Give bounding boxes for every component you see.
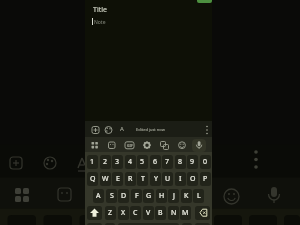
button[interactable]: 8 [175,155,186,169]
button[interactable] [192,139,206,152]
staticText: 3 [115,157,120,167]
button[interactable]: 9 [187,155,198,169]
staticText: X [121,208,126,218]
staticText: Y [154,174,158,184]
staticText: S [110,191,114,201]
button[interactable]: E [112,172,123,186]
staticText: J [173,191,175,201]
staticText: U [165,174,171,184]
staticText: N [171,208,177,218]
staticText: A [120,125,124,133]
button[interactable]: J [168,189,179,203]
button[interactable]: B [155,206,166,220]
staticText: D [121,191,127,201]
staticText: F [135,191,139,201]
button[interactable]: X [118,206,129,220]
button[interactable]: D [118,189,129,203]
staticText: R [128,174,133,184]
staticText: 1 [90,157,95,167]
button[interactable]: M [180,206,191,220]
button[interactable]: H [156,189,167,203]
button[interactable]: A [85,121,212,137]
staticText: 4 [128,157,133,167]
staticText: GIF [127,143,133,148]
button[interactable]: 1 [87,155,98,169]
button[interactable]: C [130,206,141,220]
staticText: Edited just now [136,127,165,132]
button[interactable]: R [125,172,136,186]
button[interactable]: 4 [125,155,136,169]
staticText: P [203,174,208,184]
staticText: A [96,191,101,201]
button[interactable]: Q [87,172,98,186]
button[interactable]: U [162,172,173,186]
button[interactable]: L [193,189,204,203]
button[interactable]: Y [150,172,161,186]
staticText: 0 [203,157,208,167]
staticText: E [116,174,120,184]
button[interactable]: 5 [137,155,148,169]
staticText: Title [93,5,107,15]
staticText: 2 [103,157,108,167]
staticText: W [102,174,109,184]
staticText: Q [90,174,96,184]
button[interactable]: N [168,206,179,220]
button[interactable]: T [137,172,148,186]
button[interactable]: S [106,189,117,203]
staticText: 8 [178,157,183,167]
staticText: H [159,191,165,201]
staticText: T [141,174,145,184]
staticText: 5 [140,157,145,167]
button[interactable]: V [143,206,154,220]
button[interactable]: 6 [150,155,161,169]
button[interactable]: A [93,189,104,203]
staticText: G [146,191,152,201]
button[interactable]: F [131,189,142,203]
button[interactable]: Z [105,206,116,220]
staticText: Z [108,208,113,218]
button[interactable]: K [181,189,192,203]
staticText: K [184,191,189,201]
staticText: V [146,208,151,218]
staticText: L [197,191,201,201]
button[interactable]: W [100,172,111,186]
button[interactable]: 7 [162,155,173,169]
button[interactable]: 2 [100,155,111,169]
staticText: M [182,208,189,218]
button[interactable]: 3 [112,155,123,169]
staticText: I [179,174,182,184]
staticText: B [158,208,163,218]
staticText: 6 [153,157,158,167]
button[interactable] [87,206,102,220]
staticText: Note [94,19,106,26]
button[interactable]: P [200,172,211,186]
staticText: O [190,174,196,184]
button[interactable]: G [143,189,154,203]
button[interactable]: I [175,172,186,186]
button[interactable]: O [187,172,198,186]
button[interactable]: 0 [200,155,211,169]
staticText: 7 [165,157,170,167]
staticText: 9 [190,157,195,167]
staticText: C [133,208,138,218]
button[interactable] [195,206,210,220]
